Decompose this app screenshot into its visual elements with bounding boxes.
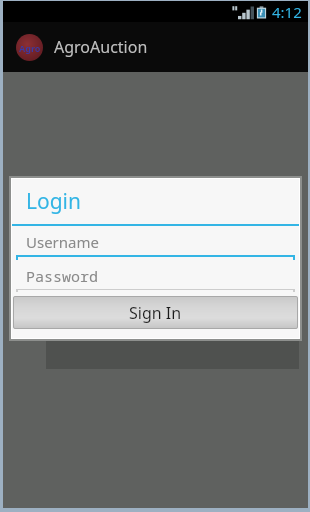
staticText: 4:12 xyxy=(272,2,302,22)
button[interactable]: Password xyxy=(16,263,295,292)
staticText: Password xyxy=(26,266,99,286)
staticText: New to Agro Auction? Sign Up Here xyxy=(56,287,289,330)
staticText: Username xyxy=(26,232,99,252)
button[interactable]: Username xyxy=(16,229,295,260)
staticText: AgroAuction xyxy=(54,36,148,58)
button[interactable]: Sign In xyxy=(13,296,298,329)
staticText: Sign In xyxy=(129,302,182,324)
staticText: Login xyxy=(26,187,82,216)
button[interactable]: New to Agro Auction? Sign Up Here xyxy=(46,281,299,369)
staticText: Agro xyxy=(19,42,41,54)
